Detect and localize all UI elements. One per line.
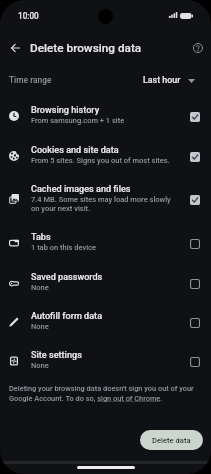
button[interactable]: Cookies and site data xyxy=(0,136,211,176)
button[interactable]: Autofill form data xyxy=(0,302,211,342)
staticText: Cached images and files xyxy=(31,184,131,195)
staticText: Cookies and site data xyxy=(31,145,119,156)
button[interactable]: Selected xyxy=(185,147,204,166)
button[interactable]: Selected xyxy=(185,107,204,126)
staticText: From 5 sites. Signs you out of most site… xyxy=(31,156,170,165)
button[interactable]: Not selected xyxy=(185,274,204,293)
staticText: 1 tab on this device xyxy=(31,243,97,252)
button[interactable]: Tabs xyxy=(0,223,211,263)
button[interactable]: Browsing history xyxy=(0,96,211,136)
staticText: Last hour xyxy=(143,75,181,85)
staticText: None xyxy=(31,283,49,292)
staticText: From samsung.com + 1 site xyxy=(31,116,125,125)
button[interactable]: Last hour xyxy=(139,72,199,88)
staticText: Browsing history xyxy=(31,105,100,116)
staticText: 10:00 xyxy=(18,11,39,21)
staticText: Autofill form data xyxy=(31,311,103,322)
button[interactable]: Site settings xyxy=(0,341,211,381)
button[interactable]: Not selected xyxy=(185,313,204,332)
button[interactable]: Not selected xyxy=(185,352,204,371)
button[interactable]: Selected xyxy=(185,190,204,209)
button[interactable]: Cached images and files xyxy=(0,177,211,221)
staticText: Delete browsing data xyxy=(30,41,142,55)
staticText: Tabs xyxy=(31,232,51,243)
button[interactable]: Deleting your browsing data doesn't sign… xyxy=(9,384,194,403)
staticText: Site settings xyxy=(31,350,82,361)
staticText: None xyxy=(31,322,49,331)
button[interactable]: Back xyxy=(2,35,28,61)
button[interactable]: Delete data xyxy=(140,430,203,450)
button[interactable]: Saved passwords xyxy=(0,263,211,303)
staticText: Delete data xyxy=(152,436,191,445)
staticText: None xyxy=(31,361,49,370)
staticText: 7.4 MB. Some sites may load more slowly … xyxy=(31,195,171,213)
button[interactable]: Help xyxy=(185,35,211,61)
staticText: Time range xyxy=(9,75,52,85)
staticText: Saved passwords xyxy=(31,272,103,283)
button[interactable]: Not selected xyxy=(185,234,204,253)
